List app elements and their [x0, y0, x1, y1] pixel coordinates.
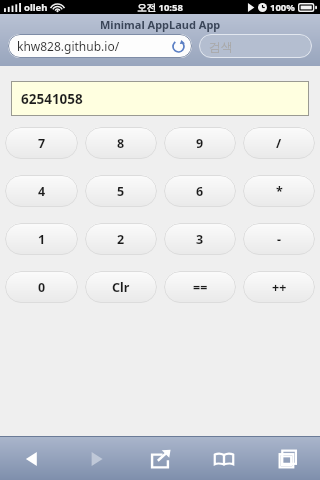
staticText: 오전 10:58	[137, 1, 183, 14]
button[interactable]: ++	[243, 271, 315, 303]
staticText: *	[276, 183, 283, 200]
staticText: Clr	[112, 279, 130, 296]
button[interactable]: 4	[5, 175, 78, 207]
button[interactable]: Forward	[64, 437, 128, 480]
staticText: 0	[38, 279, 46, 296]
staticText: 5	[117, 183, 125, 200]
other: Reload	[172, 40, 185, 53]
staticText: 100%	[270, 1, 295, 14]
button[interactable]: 2	[85, 223, 157, 255]
staticText: 3	[196, 231, 204, 248]
button[interactable]: Clr	[85, 271, 157, 303]
button[interactable]: 9	[164, 127, 236, 159]
staticText: khw828.github.io/	[17, 38, 120, 54]
button[interactable]: 검색	[199, 34, 312, 58]
button[interactable]: Back	[0, 437, 64, 480]
button[interactable]: ==	[164, 271, 236, 303]
staticText: 8	[117, 135, 125, 152]
button[interactable]: khw828.github.io/	[8, 34, 192, 58]
staticText: olleh	[24, 1, 48, 14]
button[interactable]: Bookmarks	[192, 437, 256, 480]
staticText: 검색	[209, 39, 233, 54]
button[interactable]: 8	[85, 127, 157, 159]
button[interactable]: /	[243, 127, 315, 159]
staticText: 6	[196, 183, 204, 200]
staticText: ==	[193, 279, 208, 296]
button[interactable]: Share	[128, 437, 192, 480]
button[interactable]: *	[243, 175, 315, 207]
button[interactable]: 0	[5, 271, 78, 303]
staticText: 7	[38, 135, 46, 152]
staticText: 4	[38, 183, 46, 200]
staticText: ++	[272, 279, 287, 296]
button[interactable]: 5	[85, 175, 157, 207]
staticText: Minimal AppLaud App	[100, 17, 221, 32]
staticText: 62541058	[21, 90, 83, 108]
button[interactable]: 3	[164, 223, 236, 255]
staticText: 1	[38, 231, 46, 248]
button[interactable]: 1	[5, 223, 78, 255]
button[interactable]: Tabs	[256, 437, 320, 480]
staticText: /	[276, 135, 282, 152]
button[interactable]: -	[243, 223, 315, 255]
staticText: 9	[196, 135, 204, 152]
staticText: 2	[117, 231, 125, 248]
staticText: -	[277, 231, 282, 248]
button[interactable]: 7	[5, 127, 78, 159]
button[interactable]: 62541058	[11, 81, 309, 116]
button[interactable]: 6	[164, 175, 236, 207]
